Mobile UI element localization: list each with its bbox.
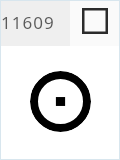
staticText: 11609 [1, 11, 55, 34]
button[interactable]: Stop [30, 71, 91, 132]
button[interactable]: 11609 [0, 0, 70, 46]
button[interactable]: Toggle check box [70, 0, 120, 46]
